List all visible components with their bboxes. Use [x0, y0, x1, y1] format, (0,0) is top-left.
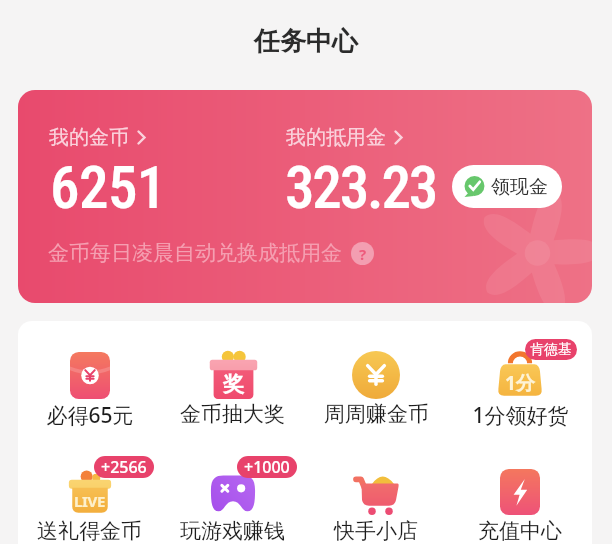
button[interactable]: Help	[351, 242, 374, 265]
staticText: 6251	[50, 153, 166, 222]
button[interactable]: 我的金币	[18, 90, 592, 303]
button[interactable]: 奖	[161, 321, 304, 369]
staticText: 周周赚金币	[324, 401, 429, 427]
staticText: +2566	[101, 456, 147, 478]
staticText: 1分	[505, 370, 535, 396]
staticText: 必得65元	[46, 401, 134, 430]
button[interactable]: 快手小店	[304, 438, 448, 486]
button[interactable]: 领现金	[452, 165, 562, 208]
staticText: 我的金币	[49, 125, 129, 150]
staticText: 1分领好货	[472, 401, 569, 430]
button[interactable]: +1000	[161, 438, 304, 486]
staticText: 快手小店	[334, 518, 418, 544]
staticText: 奖	[223, 371, 244, 397]
staticText: 玩游戏赚钱	[180, 518, 285, 544]
staticText: +1000	[244, 456, 290, 478]
staticText: LIVE	[74, 491, 106, 511]
staticText: 充值中心	[478, 518, 562, 544]
staticText: 任务中心	[254, 25, 358, 58]
button[interactable]: LIVE	[18, 438, 161, 486]
staticText: 金币抽大奖	[180, 401, 285, 427]
staticText: 肯德基	[530, 341, 572, 359]
staticText: 金币每日凌晨自动兑换成抵用金	[48, 240, 342, 266]
staticText: 领现金	[491, 175, 548, 199]
staticText: 323.23	[285, 153, 437, 222]
button[interactable]: 充值中心	[448, 438, 592, 486]
button[interactable]: 周周赚金币	[304, 321, 448, 369]
staticText: 我的抵用金	[286, 125, 386, 150]
button[interactable]: 必得65元	[18, 321, 161, 369]
button[interactable]: 1分	[448, 321, 592, 369]
staticText: ?	[359, 244, 367, 264]
staticText: 送礼得金币	[37, 518, 142, 544]
